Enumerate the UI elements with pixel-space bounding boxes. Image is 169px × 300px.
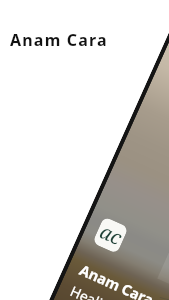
- staticText: Anam Cara: [77, 259, 157, 300]
- staticText: Healing: [67, 281, 122, 300]
- button[interactable]: Anam Cara app icon: [29, 15, 169, 300]
- button[interactable]: Anam Cara app icon: [92, 216, 129, 254]
- staticText: ac: [96, 218, 127, 251]
- staticText: Anam Cara: [10, 29, 108, 51]
